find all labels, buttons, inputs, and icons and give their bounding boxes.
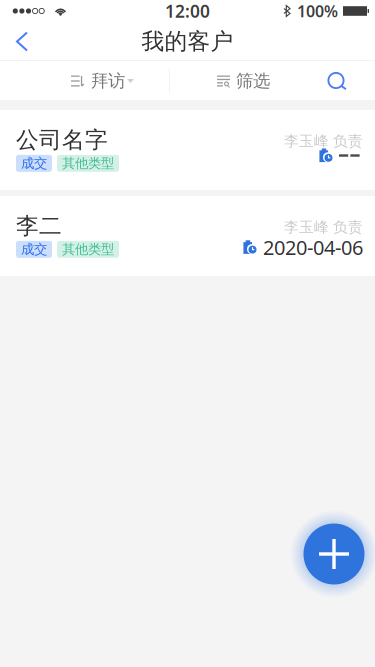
button[interactable]: Search xyxy=(315,61,359,101)
staticText: 12:00 xyxy=(165,0,210,22)
staticText: 成交 xyxy=(21,155,47,172)
staticText: 其他类型 xyxy=(62,155,114,172)
staticText: 2020-04-06 xyxy=(263,234,363,261)
button[interactable]: 李二 xyxy=(0,196,375,276)
staticText: 我的客户 xyxy=(141,28,233,55)
staticText: 100% xyxy=(297,0,338,22)
staticText: 李二 xyxy=(16,212,62,240)
button[interactable]: 拜访 xyxy=(0,61,169,101)
staticText: 其他类型 xyxy=(62,241,114,258)
button[interactable]: Add xyxy=(290,510,375,598)
staticText: 筛选 xyxy=(236,70,270,92)
staticText: 拜访 xyxy=(91,70,125,92)
button[interactable]: 公司名字 xyxy=(0,110,375,190)
button[interactable]: Back xyxy=(0,22,44,61)
staticText: 李玉峰 负责 xyxy=(284,218,363,236)
staticText: 李玉峰 负责 xyxy=(284,132,363,150)
button[interactable]: 筛选 xyxy=(169,61,315,101)
staticText: 公司名字 xyxy=(16,126,108,154)
staticText: 成交 xyxy=(21,241,47,258)
